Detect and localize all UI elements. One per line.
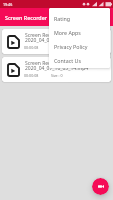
staticText: 2020_04_07_10_05_14.mp4 <box>25 65 89 72</box>
staticText: Rating <box>54 15 71 22</box>
staticText: Screen Recorder <box>25 32 64 39</box>
staticText: 19:46 <box>3 2 13 7</box>
button[interactable]: Screen Recorder <box>2 57 111 82</box>
staticText: Size : 0 <box>51 45 63 50</box>
button[interactable]: Privacy Policy <box>49 39 110 53</box>
button[interactable]: More Apps <box>49 25 110 39</box>
staticText: Contact Us <box>54 57 81 64</box>
staticText: Screen Recorder <box>25 60 64 67</box>
button[interactable]: Rating <box>49 11 110 25</box>
staticText: Privacy Policy <box>54 43 88 50</box>
staticText: More Apps <box>54 29 81 36</box>
staticText: Screen Recorder <box>5 14 48 21</box>
button[interactable]: Screen Recorder <box>2 29 111 54</box>
staticText: 2020_04_07_10_05_14.mp4 <box>25 37 89 44</box>
staticText: Size : 0 <box>51 73 63 78</box>
button[interactable]: Contact Us <box>49 53 110 67</box>
staticText: 00:00:08 <box>24 73 39 78</box>
button[interactable]: Record <box>92 178 109 195</box>
staticText: 00:00:08 <box>24 45 39 50</box>
